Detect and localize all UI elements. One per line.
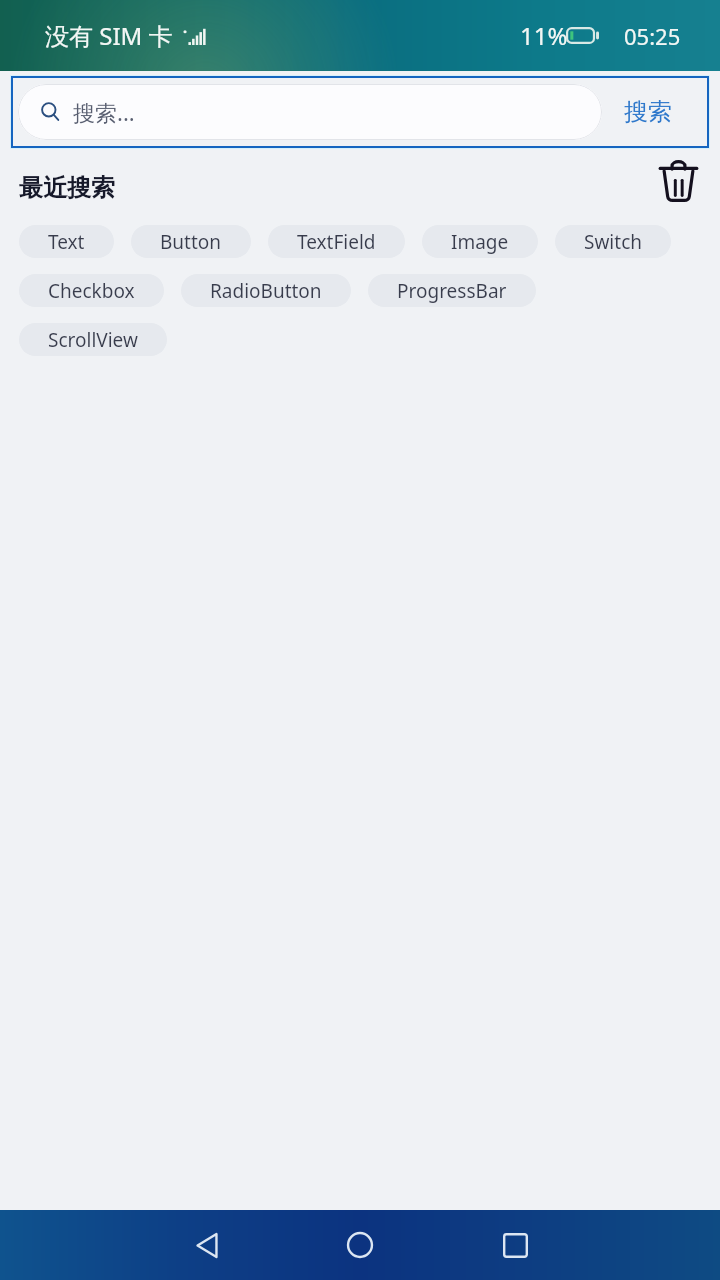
staticText: RadioButton <box>210 278 322 304</box>
button[interactable]: Button <box>131 225 251 258</box>
staticText: 11% <box>520 19 568 52</box>
button[interactable]: ProgressBar <box>368 274 536 307</box>
button[interactable]: 清除搜索历史 <box>650 153 706 209</box>
button[interactable]: Switch <box>555 225 671 258</box>
button[interactable]: Checkbox <box>19 274 164 307</box>
staticText: ScrollView <box>48 327 138 353</box>
button[interactable]: ScrollView <box>19 323 167 356</box>
staticText: 05:25 <box>624 21 681 51</box>
button[interactable]: 搜索... <box>18 84 602 140</box>
staticText: Image <box>451 229 509 255</box>
button[interactable]: Text <box>19 225 114 258</box>
staticText: Button <box>160 229 222 255</box>
staticText: ProgressBar <box>397 278 507 304</box>
staticText: Text <box>48 229 85 255</box>
button[interactable]: TextField <box>268 225 405 258</box>
staticText: 搜索 <box>624 97 672 127</box>
button[interactable]: Image <box>422 225 538 258</box>
staticText: 没有 SIM 卡 <box>45 19 173 52</box>
button[interactable]: RadioButton <box>181 274 351 307</box>
button[interactable]: 搜索 <box>596 76 699 148</box>
staticText: TextField <box>297 229 376 255</box>
staticText: 最近搜索 <box>19 173 115 203</box>
button[interactable]: 返回 <box>177 1215 237 1275</box>
staticText: Checkbox <box>48 278 135 304</box>
button[interactable]: 主屏幕 <box>330 1215 390 1275</box>
staticText: Switch <box>584 229 642 255</box>
button[interactable]: 最近任务 <box>485 1215 545 1275</box>
staticText: 搜索... <box>73 97 135 127</box>
